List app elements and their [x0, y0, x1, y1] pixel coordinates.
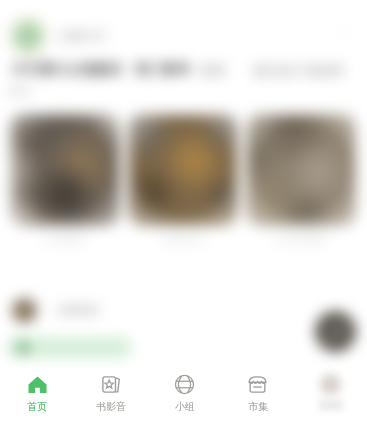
staticText: 首页 [27, 400, 47, 413]
button[interactable]: 小组 [148, 368, 221, 413]
staticText: 黄金时代 [128, 233, 238, 246]
staticText: 今天看什么电影好 [11, 61, 123, 79]
staticText: 白日梦想家 [246, 233, 356, 246]
button[interactable]: 东京物语 [10, 114, 120, 246]
button[interactable]: 书影音 [74, 368, 148, 413]
button[interactable]: 黄金时代 [128, 114, 238, 246]
button[interactable]: Author avatar [12, 298, 37, 323]
button[interactable] [6, 337, 132, 358]
staticText: 推荐 [200, 62, 226, 78]
button[interactable]: 白日梦想家 [246, 114, 356, 246]
staticText: 小组 [175, 400, 195, 413]
staticText: 最近热门电影榜 [253, 62, 344, 78]
staticText: 豆瓣日历 [58, 28, 106, 43]
button[interactable]: 市集 [221, 368, 294, 413]
button[interactable]: Profile [8, 16, 48, 56]
staticText: 市集 [248, 400, 268, 413]
staticText: 东京物语 [10, 233, 120, 246]
button[interactable]: Me [294, 368, 367, 410]
staticText: 书影音 [96, 400, 126, 413]
button[interactable]: Compose [315, 311, 356, 352]
staticText: 热门影单 [135, 61, 191, 79]
button[interactable]: 首页 [0, 368, 74, 413]
staticText: 豆瓣电影 [56, 303, 100, 317]
